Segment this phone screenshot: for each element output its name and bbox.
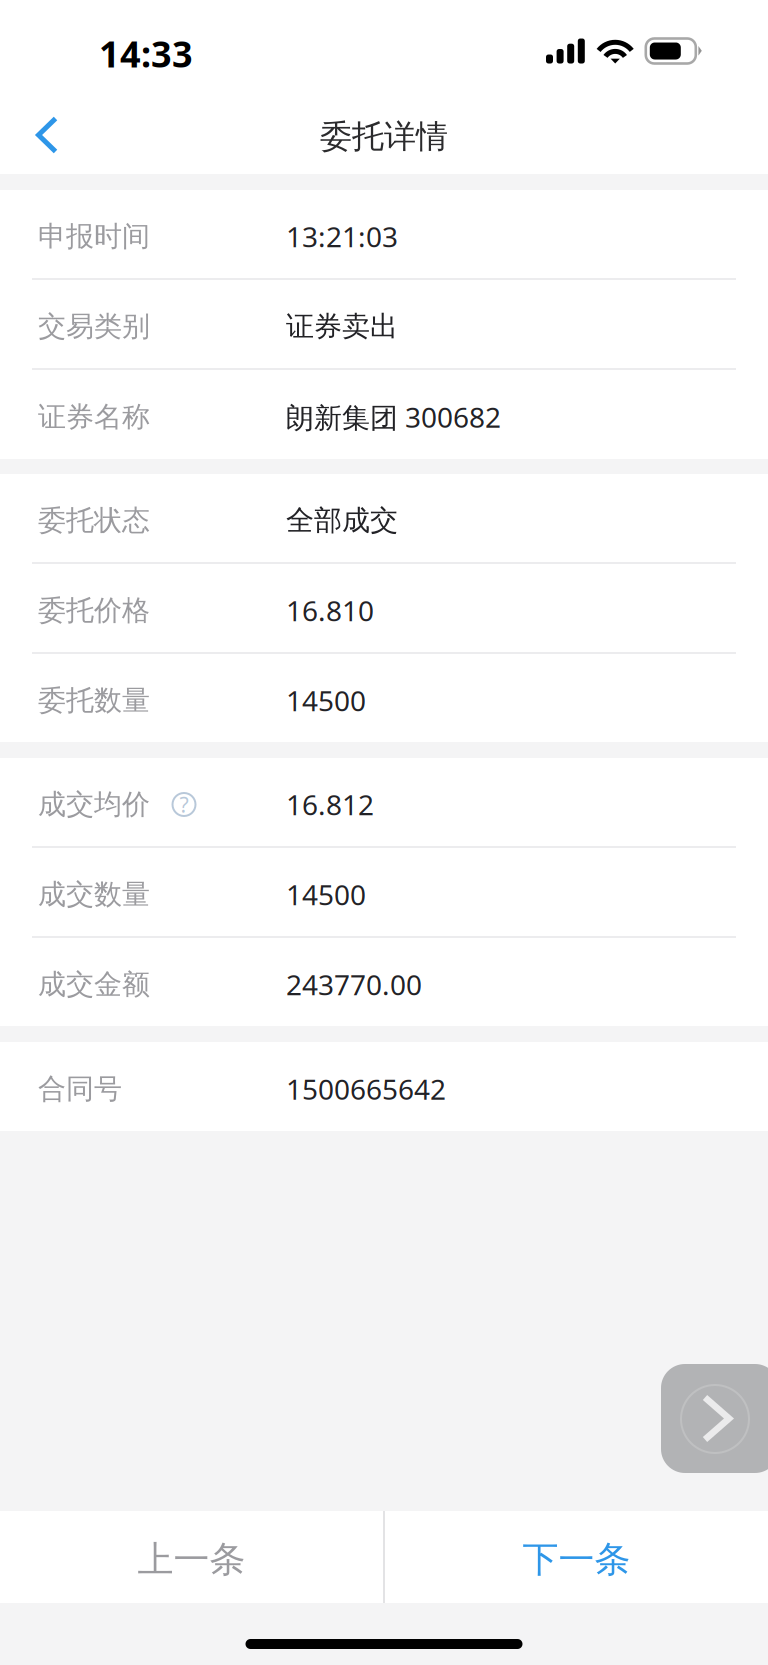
staticText: 13:21:03 <box>286 218 398 255</box>
staticText: 成交金额 <box>38 967 150 1002</box>
staticText: 申报时间 <box>38 219 150 254</box>
staticText: 全部成交 <box>286 503 398 538</box>
staticText: 委托详情 <box>320 117 448 156</box>
staticText: 证券卖出 <box>286 309 398 344</box>
staticText: 14500 <box>286 682 366 719</box>
staticText: 下一条 <box>522 1537 630 1582</box>
staticText: 16.810 <box>286 592 374 629</box>
button[interactable]: 上一条 <box>0 1511 383 1603</box>
button[interactable]: Next order <box>661 1364 768 1473</box>
staticText: 合同号 <box>38 1072 122 1106</box>
button[interactable]: Back <box>9 90 85 176</box>
button[interactable]: 下一条 <box>385 1511 768 1603</box>
staticText: 14:33 <box>99 30 193 77</box>
staticText: 委托数量 <box>38 683 150 718</box>
staticText: 14500 <box>286 876 366 913</box>
staticText: 交易类别 <box>38 309 150 344</box>
staticText: 1500665642 <box>286 1070 446 1108</box>
staticText: 上一条 <box>137 1537 245 1582</box>
staticText: 委托状态 <box>38 503 150 538</box>
staticText: 成交数量 <box>38 877 150 912</box>
staticText: 成交均价 <box>38 787 150 822</box>
staticText: 证券名称 <box>38 400 150 434</box>
staticText: 委托价格 <box>38 593 150 628</box>
staticText: 243770.00 <box>286 966 422 1003</box>
staticText: 朗新集团 300682 <box>286 398 501 436</box>
staticText: ? <box>179 790 188 819</box>
staticText: 16.812 <box>286 786 374 823</box>
